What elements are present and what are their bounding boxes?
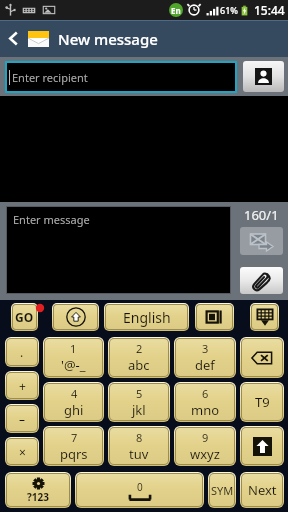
button[interactable]: Back: [0, 20, 26, 57]
staticText: 6: [202, 386, 209, 401]
staticText: abc: [128, 356, 150, 374]
staticText: def: [195, 356, 215, 374]
staticText: Enter message: [13, 212, 90, 227]
staticText: 3: [202, 341, 209, 356]
staticText: ?123: [27, 490, 49, 504]
staticText: 5: [136, 386, 143, 401]
staticText: +: [19, 378, 26, 394]
staticText: –: [19, 411, 26, 427]
button[interactable]: Caps lock: [242, 428, 282, 464]
button[interactable]: Enter message: [13, 212, 231, 294]
staticText: mno: [191, 401, 220, 419]
staticText: Enter recipient: [12, 70, 88, 85]
button[interactable]: Hide keyboard: [252, 305, 277, 329]
staticText: En: [171, 5, 181, 16]
staticText: English: [123, 308, 171, 327]
staticText: T9: [255, 393, 270, 411]
button[interactable]: 2: [110, 339, 168, 376]
button[interactable]: 7: [45, 428, 102, 464]
staticText: 2: [136, 341, 143, 356]
button[interactable]: 5: [110, 384, 168, 420]
button[interactable]: 9: [176, 428, 234, 464]
button[interactable]: Pick contact: [243, 61, 284, 92]
button[interactable]: +: [7, 373, 37, 398]
staticText: 160/1: [244, 206, 279, 224]
staticText: GO: [15, 309, 34, 325]
button[interactable]: 1: [45, 339, 102, 376]
button[interactable]: Send message: [240, 227, 283, 255]
button[interactable]: Delete: [242, 339, 282, 376]
button[interactable]: 6: [176, 384, 234, 420]
staticText: Next: [248, 481, 277, 499]
staticText: 0: [137, 480, 143, 494]
staticText: jkl: [132, 401, 146, 419]
button[interactable]: Enter recipient: [9, 61, 237, 93]
staticText: 4: [71, 386, 78, 401]
button[interactable]: Attach file: [240, 267, 283, 294]
staticText: 61%: [220, 4, 238, 16]
staticText: ghi: [64, 401, 84, 419]
staticText: SYM: [211, 483, 234, 498]
button[interactable]: T9: [242, 384, 282, 420]
staticText: wxyz: [190, 445, 220, 463]
button[interactable]: .: [7, 339, 37, 365]
staticText: 7: [71, 430, 78, 445]
staticText: New message: [58, 29, 158, 49]
staticText: .: [20, 344, 24, 360]
button[interactable]: Split keyboard: [197, 305, 232, 329]
button[interactable]: ?123: [7, 474, 69, 506]
button[interactable]: –: [7, 406, 37, 431]
button[interactable]: Next: [242, 474, 282, 506]
button[interactable]: Space: [77, 474, 202, 506]
button[interactable]: 3: [176, 339, 234, 376]
staticText: 8: [136, 430, 143, 445]
staticText: 15:44: [254, 2, 285, 18]
staticText: ×: [19, 444, 26, 460]
button[interactable]: GO: [13, 305, 36, 329]
staticText: tuv: [129, 445, 149, 463]
button[interactable]: ×: [7, 439, 37, 464]
button[interactable]: 8: [110, 428, 168, 464]
button[interactable]: Shift: [54, 305, 97, 329]
button[interactable]: English: [106, 305, 187, 329]
staticText: pqrs: [60, 445, 88, 463]
staticText: '@-_: [61, 356, 86, 374]
staticText: 1: [70, 341, 77, 356]
button[interactable]: 4: [45, 384, 102, 420]
button[interactable]: SYM: [210, 474, 234, 506]
staticText: 9: [202, 430, 209, 445]
